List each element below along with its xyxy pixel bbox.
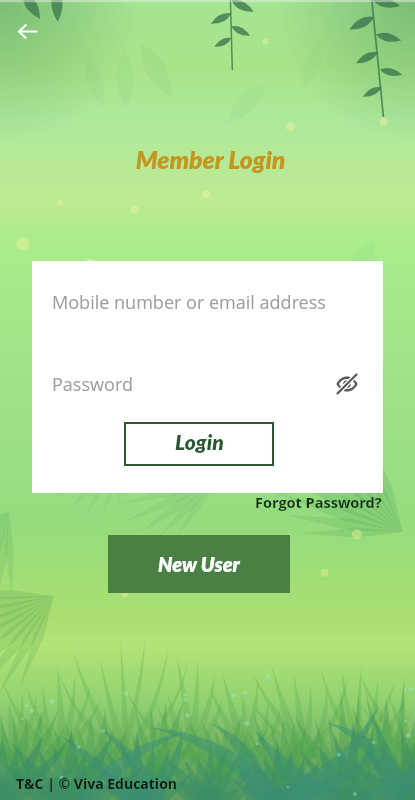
button[interactable]: Show password [333, 370, 361, 398]
staticText: New User [158, 552, 240, 576]
button[interactable]: Back [7, 11, 47, 51]
button[interactable]: Mobile number or email address [32, 290, 383, 315]
button[interactable]: Login [124, 422, 274, 466]
staticText: Forgot Password? [255, 493, 382, 513]
staticText: Member Login [3, 145, 415, 175]
button[interactable]: New User [108, 535, 290, 593]
staticText: Login [175, 429, 224, 454]
button[interactable]: Forgot Password? [255, 493, 382, 513]
button[interactable]: Password [52, 372, 133, 397]
staticText: Mobile number or email address [52, 290, 326, 315]
button[interactable]: T&C | © Viva Education [16, 774, 177, 793]
